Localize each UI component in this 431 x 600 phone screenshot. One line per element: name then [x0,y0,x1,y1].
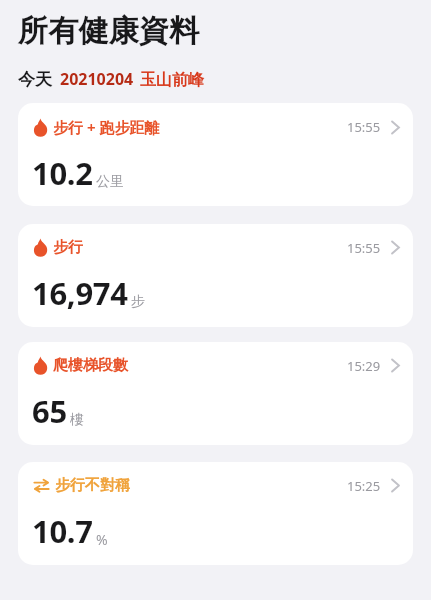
staticText: 步行 [53,238,83,257]
staticText: % [96,530,108,549]
button[interactable]: Activity [18,342,413,445]
staticText: 15:55 [347,239,381,257]
staticText: 今天 [18,69,52,90]
staticText: 步 [131,293,145,311]
other: Asymmetry [33,477,50,494]
staticText: 公里 [96,173,124,191]
staticText: 步行不對稱 [55,476,130,495]
button[interactable]: Asymmetry [18,462,413,565]
staticText: 16,974 [32,272,128,314]
other: Open details [391,358,400,373]
other: Open details [391,478,400,493]
other: Activity [33,238,48,257]
staticText: 玉山前峰 [140,70,204,90]
staticText: 15:25 [347,477,381,495]
other: Open details [391,240,400,255]
staticText: 爬樓梯段數 [53,356,128,375]
staticText: 65 [32,390,67,432]
button[interactable]: Activity [18,103,413,206]
staticText: 步行 + 跑步距離 [53,117,160,137]
other: Activity [33,356,48,375]
button[interactable]: Activity [18,224,413,327]
staticText: 20210204 [60,68,134,90]
other: Activity [33,118,48,137]
staticText: 所有健康資料 [18,12,200,50]
other: Open details [391,120,400,135]
staticText: 15:55 [347,118,381,136]
staticText: 樓 [70,411,84,429]
staticText: 15:29 [347,357,381,375]
staticText: 10.7 [32,510,93,552]
staticText: 10.2 [32,152,93,194]
